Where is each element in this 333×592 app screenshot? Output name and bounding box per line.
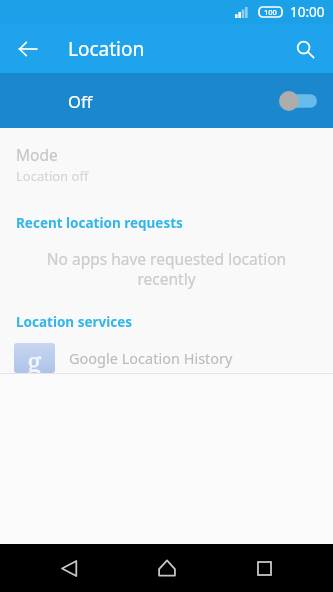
button[interactable]: Search [283, 27, 327, 71]
staticText: 100 [264, 7, 277, 17]
staticText: Location services [16, 313, 133, 331]
button[interactable]: Back [41, 544, 97, 592]
button[interactable]: g [0, 343, 333, 373]
staticText: g [27, 343, 42, 373]
staticText: 10:00 [290, 3, 325, 21]
button[interactable]: Recent apps [236, 544, 292, 592]
staticText: Recent location requests [16, 214, 183, 232]
button[interactable]: Off [0, 73, 333, 128]
staticText: No apps have requested location recently [28, 248, 305, 290]
staticText: Location off [16, 167, 89, 185]
staticText: Mode [16, 144, 58, 165]
staticText: Off [68, 90, 93, 112]
button[interactable]: Mode [0, 144, 333, 185]
staticText: Google Location History [69, 348, 233, 368]
button[interactable]: Home [139, 544, 195, 592]
staticText: Location [68, 36, 145, 62]
button[interactable]: Back [6, 27, 50, 71]
